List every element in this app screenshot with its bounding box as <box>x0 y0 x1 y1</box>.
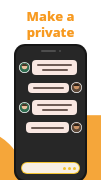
staticText: Make a private <box>5 7 96 40</box>
staticText: chat! <box>34 40 67 58</box>
button[interactable] <box>19 100 82 115</box>
button[interactable] <box>19 60 82 75</box>
button[interactable]: Message input <box>22 163 79 173</box>
button[interactable] <box>19 82 82 93</box>
button[interactable] <box>19 122 82 133</box>
